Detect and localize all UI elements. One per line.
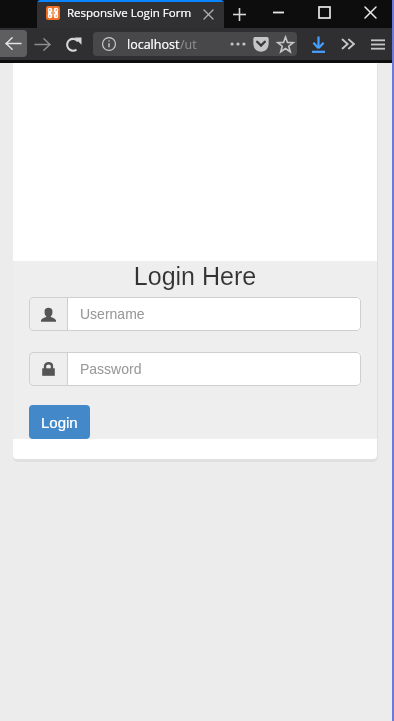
staticText: Responsive Login Form xyxy=(67,5,192,21)
staticText: Login xyxy=(41,414,78,431)
button[interactable]: More xyxy=(226,32,249,56)
button[interactable]: Close xyxy=(347,1,393,24)
button[interactable]: Bookmark xyxy=(273,32,297,56)
button[interactable]: Back xyxy=(0,30,27,57)
button[interactable]: New tab xyxy=(227,0,251,28)
button[interactable]: Login xyxy=(29,405,90,439)
button[interactable]: Responsive Login Form xyxy=(37,0,224,28)
button[interactable]: Save to Pocket xyxy=(249,32,273,56)
button[interactable]: More tools xyxy=(335,28,361,60)
staticText: Login Here xyxy=(13,262,377,290)
staticText: Username xyxy=(80,306,145,322)
button[interactable]: localhost xyxy=(93,32,297,56)
staticText: Password xyxy=(80,361,142,377)
button[interactable]: Reload xyxy=(61,28,86,60)
button[interactable]: Downloads xyxy=(305,28,331,60)
button[interactable]: Forward xyxy=(30,28,55,60)
staticText: localhost xyxy=(127,36,180,53)
button[interactable]: Close tab xyxy=(199,0,217,28)
button[interactable]: Open menu xyxy=(365,28,391,60)
button[interactable]: Minimize xyxy=(255,1,301,24)
button[interactable]: Maximize xyxy=(301,1,347,24)
staticText: /ut xyxy=(180,36,197,53)
